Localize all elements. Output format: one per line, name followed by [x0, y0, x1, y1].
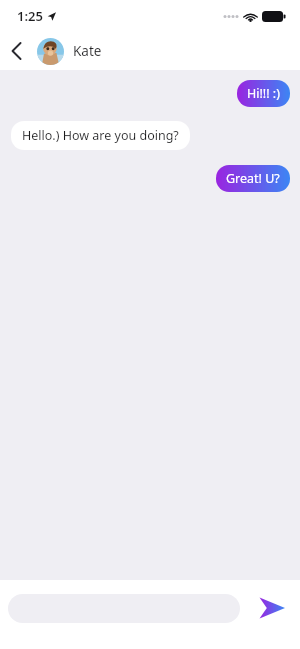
button[interactable]: Hi!!! :)	[237, 80, 290, 107]
staticText: Hello.) How are you doing?	[22, 127, 179, 144]
staticText: Hi!!! :)	[247, 85, 280, 102]
button[interactable]: Hello.) How are you doing?	[11, 121, 190, 150]
button[interactable]: Back	[0, 35, 32, 67]
staticText: 1:25	[17, 7, 43, 25]
button[interactable]: Send	[254, 590, 290, 626]
staticText: Kate	[73, 42, 102, 60]
button[interactable]: Great! U?	[216, 165, 290, 192]
button[interactable]: Profile photo	[37, 38, 64, 65]
staticText: Great! U?	[226, 170, 280, 187]
